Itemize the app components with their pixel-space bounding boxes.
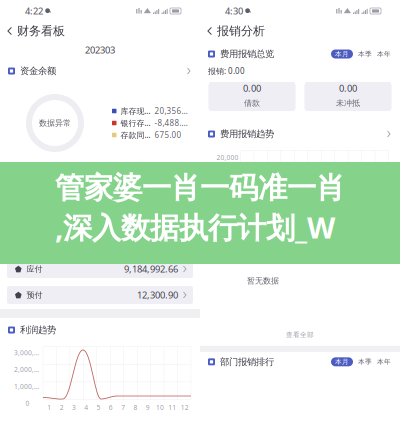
staticText: 数据异常 — [39, 118, 71, 128]
staticText: 往来余额 — [20, 180, 56, 192]
staticText: 未冲抵 — [336, 98, 360, 108]
staticText: 12,300.90 — [137, 289, 178, 301]
staticText: 0.00 — [160, 237, 178, 249]
staticText: 本季 — [358, 50, 372, 58]
staticText: 0 — [25, 399, 29, 408]
staticText: 本月 — [335, 50, 349, 58]
staticText: 借款 — [244, 98, 260, 108]
staticText: 4 — [84, 403, 88, 412]
button[interactable]: 费用报销项目占比 — [200, 232, 400, 248]
staticText: 库存现金 — [120, 106, 150, 116]
staticText: 10,000 — [216, 176, 238, 185]
button[interactable]: 查看全部 — [200, 330, 400, 340]
staticText: 20,000 — [216, 153, 238, 162]
staticText: 费用报销项目占比 — [220, 234, 292, 246]
staticText: 4:30 — [225, 5, 243, 17]
staticText: -8,488.00 — [154, 118, 187, 128]
staticText: 管家婆一肖一码准一肖 — [55, 170, 345, 206]
staticText: 9,184,992.66 — [124, 263, 178, 275]
staticText: 本年 — [377, 358, 391, 366]
staticText: 利润趋势 — [20, 324, 56, 336]
button[interactable]: 应收 — [7, 208, 193, 226]
staticText: 暂无数据 — [247, 276, 279, 286]
button[interactable]: 本季 — [358, 49, 372, 58]
button[interactable]: 费用报销趋势 — [200, 126, 400, 142]
staticText: 11 — [168, 403, 176, 412]
button[interactable]: 往来余额 — [0, 178, 200, 194]
staticText: 6 — [109, 403, 113, 412]
button[interactable]: 本月 — [331, 357, 353, 366]
staticText: 12 — [181, 403, 189, 412]
staticText: 资金余额 — [20, 65, 56, 77]
button[interactable]: 部门报销排行 — [200, 354, 400, 370]
staticText: 202303 — [85, 44, 115, 56]
staticText: 费用报销总览 — [220, 48, 274, 60]
button[interactable]: 预付 — [7, 286, 193, 304]
staticText: 查看全部 — [286, 331, 314, 339]
staticText: 本季 — [358, 358, 372, 366]
staticText: 0.00 — [243, 82, 261, 94]
staticText: -13,164.25 — [134, 211, 178, 223]
staticText: 10 — [156, 403, 164, 412]
button[interactable]: 本月 — [331, 49, 353, 58]
staticText: 9 — [146, 403, 150, 412]
staticText: 费用报销趋势 — [220, 128, 274, 140]
staticText: 0.00 — [339, 82, 357, 94]
button[interactable]: 本年 — [377, 49, 391, 58]
staticText: 20,356.10 — [154, 106, 187, 116]
staticText: 部门报销排行 — [220, 356, 274, 368]
staticText: 报销分析 — [217, 24, 265, 38]
button[interactable]: 预收 — [7, 234, 193, 252]
button[interactable]: 本年 — [377, 357, 391, 366]
staticText: 财务看板 — [17, 24, 65, 38]
staticText: 存款同业 — [120, 130, 150, 140]
staticText: 预付 — [27, 290, 43, 300]
staticText: 5 — [97, 403, 101, 412]
button[interactable]: 资金余额 — [0, 63, 200, 79]
staticText: 4:22 — [25, 5, 43, 17]
staticText: 7 — [121, 403, 125, 412]
staticText: 本月 — [335, 358, 349, 366]
staticText: 3,000,000 — [14, 348, 41, 357]
staticText: 1 — [47, 403, 51, 412]
staticText: 1,000,000 — [14, 382, 41, 391]
staticText: 675.00 — [154, 130, 181, 140]
staticText: 本年 — [377, 50, 391, 58]
button[interactable]: 利润趋势 — [0, 322, 200, 338]
staticText: 3 — [269, 205, 273, 214]
button[interactable]: 本季 — [358, 357, 372, 366]
staticText: 8 — [133, 403, 137, 412]
button[interactable]: 应付 — [7, 260, 193, 278]
staticText: 5 — [294, 205, 298, 214]
staticText: 银行存款 — [120, 118, 150, 128]
staticText: 3 — [72, 403, 76, 412]
staticText: 应付 — [27, 264, 43, 274]
staticText: ,深入数据执行计划_W — [55, 207, 335, 246]
staticText: 2 — [60, 403, 64, 412]
staticText: 2 — [257, 205, 261, 214]
button[interactable]: 报销分析 — [200, 22, 400, 40]
staticText: 2,000,000 — [14, 365, 41, 374]
button[interactable]: 财务看板 — [0, 22, 200, 40]
button[interactable]: 费用报销总览 — [200, 46, 400, 62]
staticText: 报销: 0.00 — [208, 66, 245, 76]
